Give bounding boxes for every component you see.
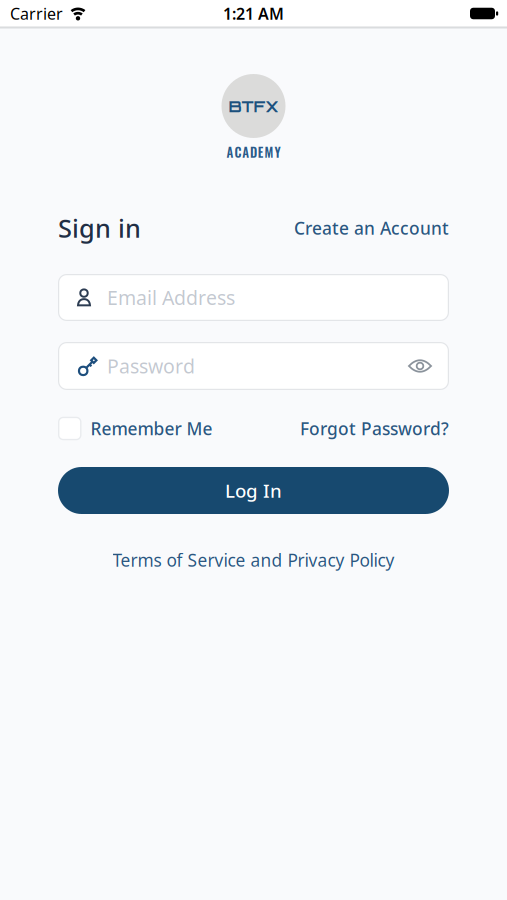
staticText: 1:21 AM [223, 3, 284, 24]
staticText: Terms of Service and Privacy Policy [112, 548, 394, 571]
staticText: Email Address [107, 284, 235, 311]
staticText: Forgot Password? [300, 417, 449, 440]
staticText: Log In [225, 478, 282, 503]
button[interactable]: Forgot Password? [300, 417, 449, 440]
staticText: Create an Account [294, 216, 449, 239]
button[interactable]: Terms of Service and Privacy Policy [112, 548, 394, 571]
staticText: Remember Me [90, 417, 212, 440]
button[interactable]: Email Address [58, 274, 449, 321]
staticText: Carrier [10, 3, 63, 24]
staticText: Sign in [58, 211, 141, 245]
button[interactable]: Create an Account [294, 216, 449, 239]
button[interactable]: Password [58, 342, 449, 390]
button[interactable]: Log In [58, 467, 449, 514]
staticText: BTFX [228, 96, 278, 116]
staticText: Password [107, 353, 195, 379]
button[interactable] [408, 358, 432, 374]
button[interactable]: Remember Me [58, 417, 212, 440]
staticText: ACADEMY [227, 143, 280, 161]
